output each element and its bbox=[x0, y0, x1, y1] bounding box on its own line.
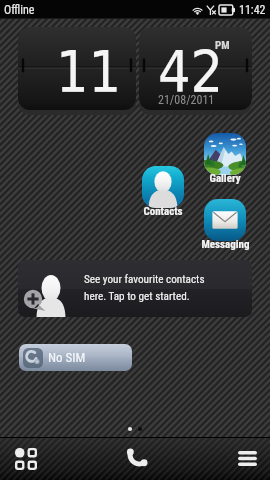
button[interactable]: Phone bbox=[109, 437, 161, 480]
button[interactable]: Menu bbox=[221, 437, 270, 480]
staticText: Messaging bbox=[201, 238, 250, 251]
staticText: PM bbox=[215, 39, 230, 52]
staticText: Offline bbox=[4, 3, 35, 17]
button[interactable]: Gallery bbox=[204, 133, 246, 188]
staticText: 21/08/2011 bbox=[158, 93, 215, 107]
staticText: 11 bbox=[56, 39, 122, 105]
staticText: No SIM bbox=[48, 350, 86, 365]
button[interactable]: Applications bbox=[0, 437, 52, 480]
button[interactable]: Clock 11:42 PM, 21/08/2011 bbox=[18, 27, 250, 115]
staticText: See your favourite contacts bbox=[84, 273, 205, 286]
staticText: Contacts bbox=[143, 205, 183, 218]
staticText: 11:42 bbox=[239, 3, 266, 17]
staticText: 42 bbox=[158, 39, 224, 105]
button[interactable]: See your favourite contacts bbox=[18, 260, 252, 317]
staticText: Gallery bbox=[209, 172, 241, 185]
button[interactable]: Contacts bbox=[142, 166, 184, 221]
staticText: here. Tap to get started. bbox=[84, 290, 190, 303]
button[interactable]: No SIM bbox=[19, 344, 132, 371]
button[interactable]: Messaging bbox=[204, 199, 246, 254]
